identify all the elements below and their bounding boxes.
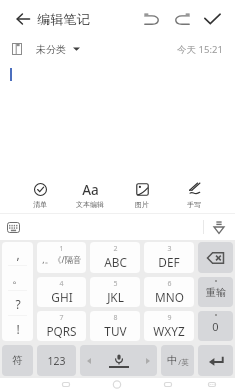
button[interactable]: Backspace [198, 242, 233, 273]
staticText: 9 [167, 313, 172, 323]
button[interactable]: 手写 [172, 181, 216, 209]
button[interactable]: 重输 [198, 277, 233, 307]
button[interactable]: 0 [198, 311, 233, 341]
button[interactable]: ! [2, 316, 33, 341]
staticText: 8 [113, 313, 118, 323]
staticText: 重输 [206, 286, 226, 299]
button[interactable]: 1 [37, 242, 86, 273]
button[interactable]: Back [7, 0, 39, 38]
staticText: 2 [113, 244, 118, 254]
button[interactable]: ? [2, 291, 33, 316]
staticText: 文本编辑 [76, 200, 104, 209]
staticText: 中 [167, 354, 178, 367]
staticText: 图片 [135, 200, 149, 209]
staticText: 7 [59, 313, 64, 323]
button[interactable]: Enter [198, 345, 233, 376]
button[interactable]: , [2, 242, 33, 266]
staticText: Aa [82, 181, 99, 196]
staticText: GHI [51, 289, 73, 305]
button[interactable]: 未分类 [12, 38, 80, 60]
button[interactable]: Back [159, 378, 177, 390]
button[interactable]: 9 [144, 311, 194, 341]
staticText: 3 [167, 244, 172, 254]
staticText: /英 [178, 357, 189, 367]
staticText: 未分类 [36, 43, 66, 56]
staticText: ,。《/隔音 [42, 254, 82, 266]
staticText: 手写 [187, 200, 201, 209]
button[interactable]: 3 [144, 242, 194, 273]
staticText: 1 [59, 244, 64, 254]
button[interactable]: Undo [138, 0, 166, 38]
staticText: PQRS [46, 323, 77, 339]
button[interactable]: 图片 [120, 181, 164, 209]
staticText: 今天 15:21 [177, 43, 223, 56]
staticText: 4 [59, 279, 64, 289]
button[interactable]: 4 [37, 277, 86, 307]
staticText: 6 [167, 279, 172, 289]
button[interactable]: 6 [144, 277, 194, 307]
staticText: 0 [212, 319, 219, 334]
button[interactable]: 2 [90, 242, 140, 273]
staticText: JKL [107, 289, 124, 305]
staticText: 。 [12, 271, 24, 286]
button[interactable]: 8 [90, 311, 140, 341]
button[interactable]: 中 [161, 345, 194, 376]
button[interactable]: Redo [168, 0, 196, 38]
button[interactable]: 清单 [18, 181, 62, 209]
staticText: ? [15, 296, 21, 312]
button[interactable]: Switch input method [203, 378, 221, 390]
staticText: 清单 [33, 200, 47, 209]
button[interactable]: 7 [37, 311, 86, 341]
button[interactable]: Home [108, 378, 126, 390]
staticText: MNO [155, 289, 184, 305]
staticText: 编辑笔记 [37, 11, 90, 28]
staticText: , [16, 246, 20, 262]
staticText: WXYZ [153, 323, 185, 339]
button[interactable]: Aa [68, 181, 112, 209]
button[interactable]: 符 [2, 345, 33, 376]
staticText: 符 [12, 354, 23, 367]
button[interactable]: Keyboard layout [2, 214, 24, 240]
button[interactable]: Space, voice input [80, 345, 157, 376]
button[interactable]: Recents [57, 378, 75, 390]
staticText: DEF [158, 254, 180, 270]
staticText: TUV [104, 323, 127, 339]
staticText: ! [16, 321, 20, 337]
button[interactable]: 。 [2, 266, 33, 291]
staticText: 5 [113, 279, 118, 289]
button[interactable]: Hide keyboard [206, 214, 232, 240]
button[interactable]: Save [197, 0, 228, 38]
staticText: ABC [104, 254, 127, 270]
button[interactable]: 123 [37, 345, 76, 376]
staticText: 123 [47, 354, 66, 368]
button[interactable]: 5 [90, 277, 140, 307]
